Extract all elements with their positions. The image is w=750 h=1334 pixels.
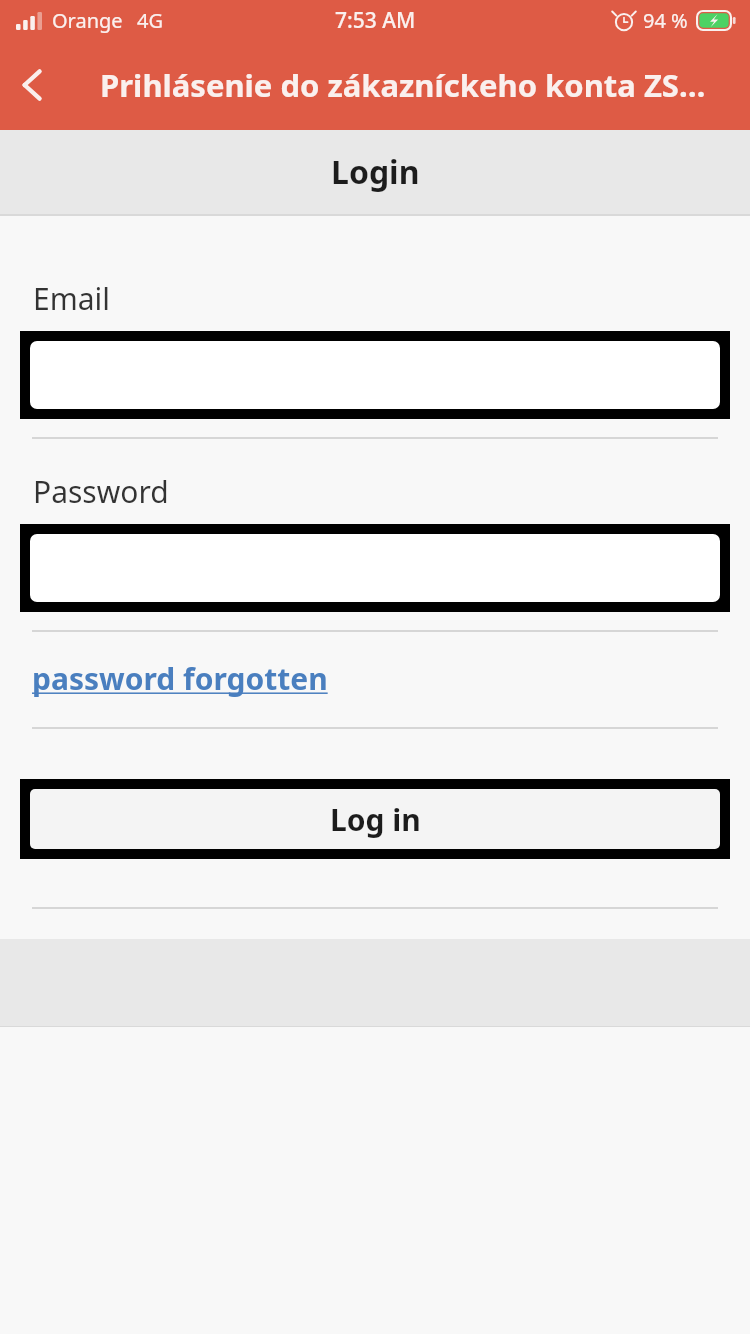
staticText: 4G: [137, 7, 163, 34]
button[interactable]: [20, 524, 730, 612]
staticText: password forgotten: [32, 658, 328, 699]
staticText: Password: [33, 471, 169, 512]
staticText: Email: [33, 278, 111, 319]
button[interactable]: Back: [0, 52, 66, 118]
button[interactable]: Log in: [20, 779, 730, 859]
staticText: Orange: [52, 7, 123, 34]
button[interactable]: password forgotten: [32, 658, 328, 699]
staticText: 94 %: [643, 7, 688, 34]
staticText: Log in: [330, 799, 421, 840]
staticText: Prihlásenie do zákazníckeho konta ZS…: [100, 64, 706, 106]
staticText: 7:53 AM: [335, 6, 416, 35]
staticText: Login: [331, 150, 420, 194]
button[interactable]: [20, 331, 730, 419]
